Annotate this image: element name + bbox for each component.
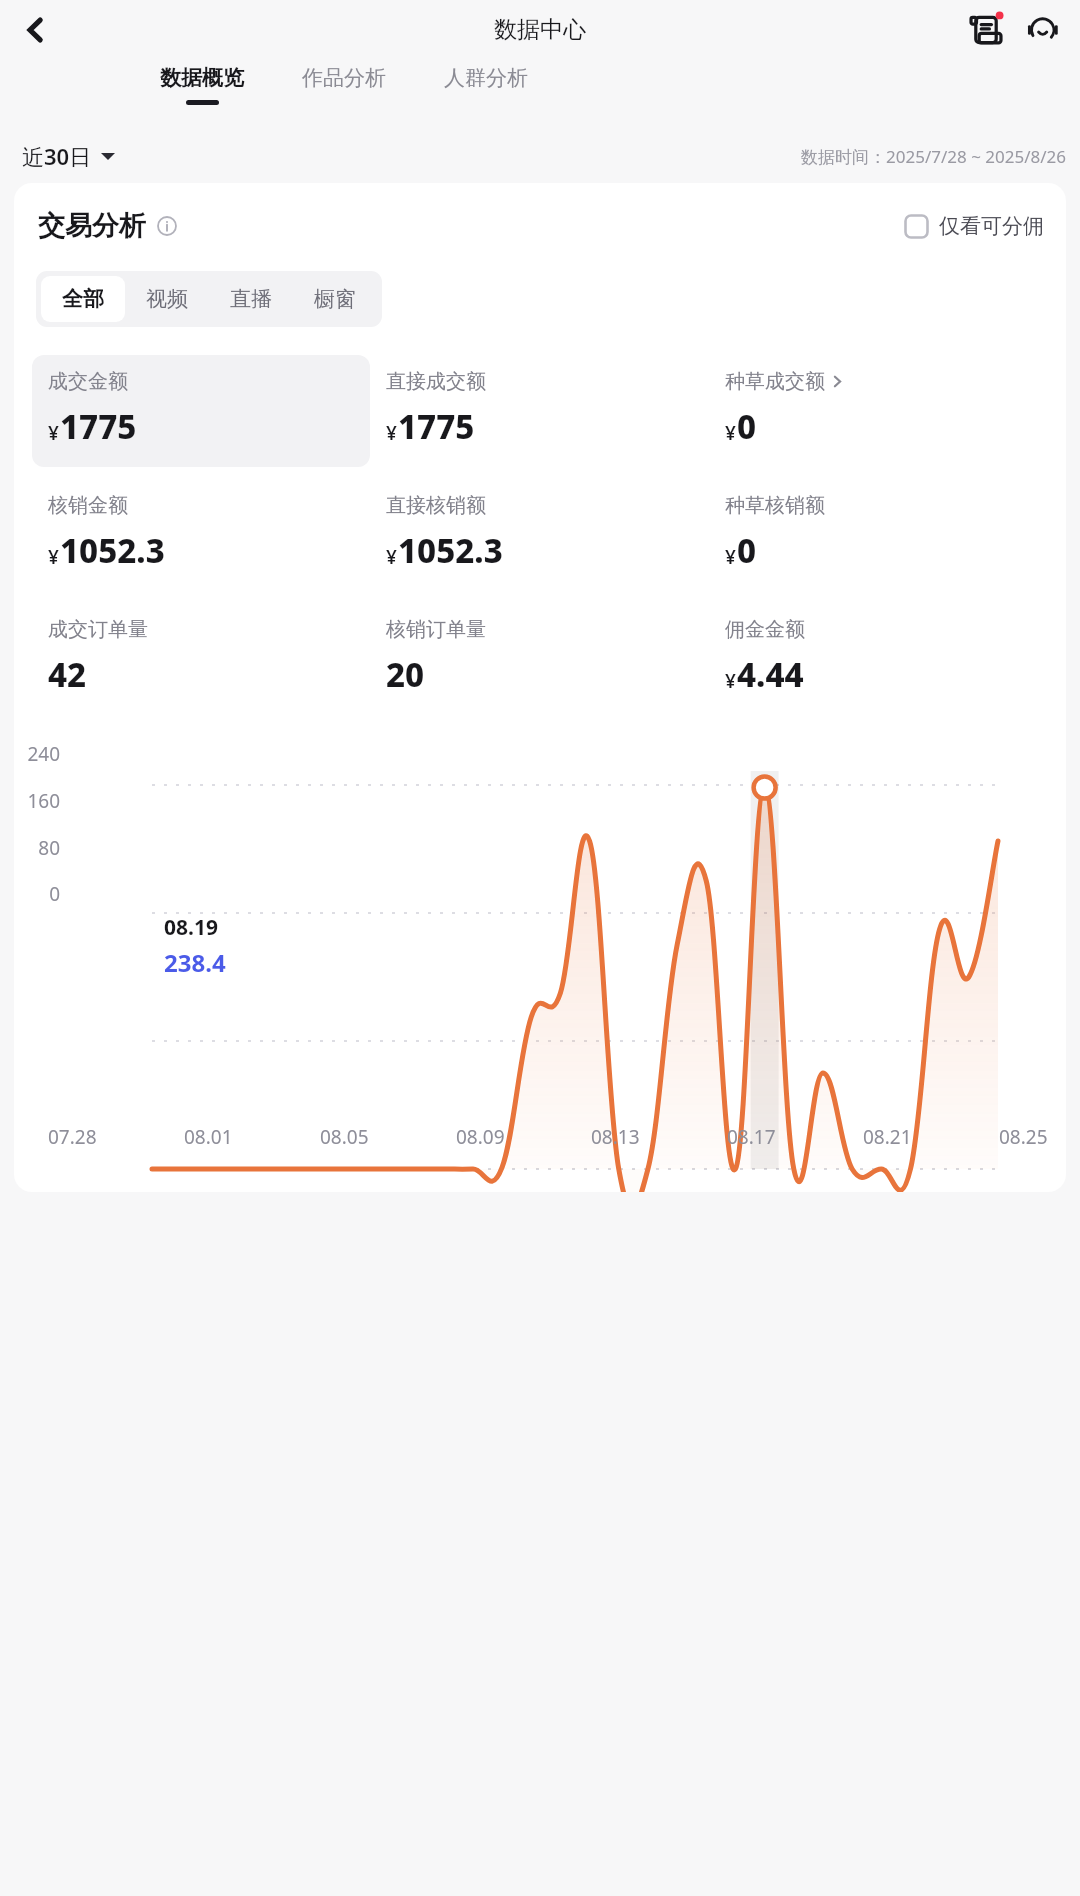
staticText: ¥ [725,420,736,446]
staticText: 作品分析 [302,65,386,91]
button[interactable]: 成交金额 [32,355,370,467]
staticText: 08.25 [999,1124,1048,1150]
staticText: 种草核销额 [725,493,825,518]
staticText: 核销金额 [48,493,128,518]
staticText: 近30日 [22,141,92,171]
staticText: 1775 [60,404,137,449]
staticText: 80 [14,835,60,861]
button[interactable]: 橱窗 [293,276,377,322]
button[interactable]: 作品分析 [302,65,386,100]
button[interactable]: 近30日 [22,141,115,171]
staticText: 佣金金额 [725,617,805,642]
staticText: 08.17 [727,1124,776,1150]
staticText: 0 [14,881,60,907]
staticText: 数据中心 [494,15,586,44]
staticText: 交易分析 [38,209,146,243]
staticText: 42 [48,652,87,697]
staticText: 08.13 [591,1124,640,1150]
staticText: 1052.3 [60,528,165,573]
staticText: 08.21 [863,1124,912,1150]
staticText: 08.05 [320,1124,369,1150]
staticText: 1775 [398,404,475,449]
button[interactable]: 核销金额 [32,479,370,591]
staticText: ¥ [725,544,736,570]
button[interactable]: 全部 [41,276,125,322]
button[interactable]: 直播 [209,276,293,322]
staticText: ¥ [48,544,59,570]
staticText: 4.44 [737,652,804,697]
staticText: 0 [737,528,757,573]
staticText: 直接成交额 [386,369,486,394]
staticText: 238.4 [164,946,226,979]
staticText: ¥ [386,420,397,446]
staticText: 240 [14,741,60,767]
staticText: 人群分析 [444,65,528,91]
button[interactable]: 仅看可分佣 [904,213,1044,239]
button[interactable]: 种草成交额 [709,355,1048,467]
staticText: 视频 [146,286,188,312]
staticText: 08.01 [184,1124,233,1150]
button[interactable]: 直接成交额 [370,355,709,467]
button[interactable]: Back [10,4,62,56]
staticText: 1052.3 [398,528,503,573]
button[interactable]: 客服 [1018,6,1066,54]
staticText: 20 [386,652,425,697]
staticText: 直接核销额 [386,493,486,518]
button[interactable]: 08.19 [164,913,226,979]
staticText: 数据概览 [160,65,244,91]
staticText: 核销订单量 [386,617,486,642]
button[interactable]: 核销订单量 [370,603,709,715]
staticText: 全部 [62,286,104,312]
staticText: ¥ [725,668,736,694]
staticText: 种草成交额 [725,369,825,394]
staticText: 0 [737,404,757,449]
staticText: 07.28 [48,1124,97,1150]
button[interactable]: 视频 [125,276,209,322]
staticText: 160 [14,788,60,814]
button[interactable]: 直接核销额 [370,479,709,591]
button[interactable]: 说明 [156,215,178,237]
staticText: 成交订单量 [48,617,148,642]
button[interactable]: 种草核销额 [709,479,1048,591]
staticText: 成交金额 [48,369,128,394]
staticText: 08.19 [164,913,218,942]
staticText: 数据时间：2025/7/28 ~ 2025/8/26 [801,145,1066,168]
staticText: 橱窗 [314,286,356,312]
staticText: 直播 [230,286,272,312]
button[interactable]: 成交订单量 [32,603,370,715]
staticText: 仅看可分佣 [939,213,1044,239]
staticText: 08.09 [456,1124,505,1150]
button[interactable]: 人群分析 [444,65,528,100]
button[interactable]: 佣金金额 [709,603,1048,715]
button[interactable]: 订单 [962,6,1010,54]
button[interactable]: 数据概览 [160,65,244,105]
staticText: ¥ [48,420,59,446]
staticText: ¥ [386,544,397,570]
